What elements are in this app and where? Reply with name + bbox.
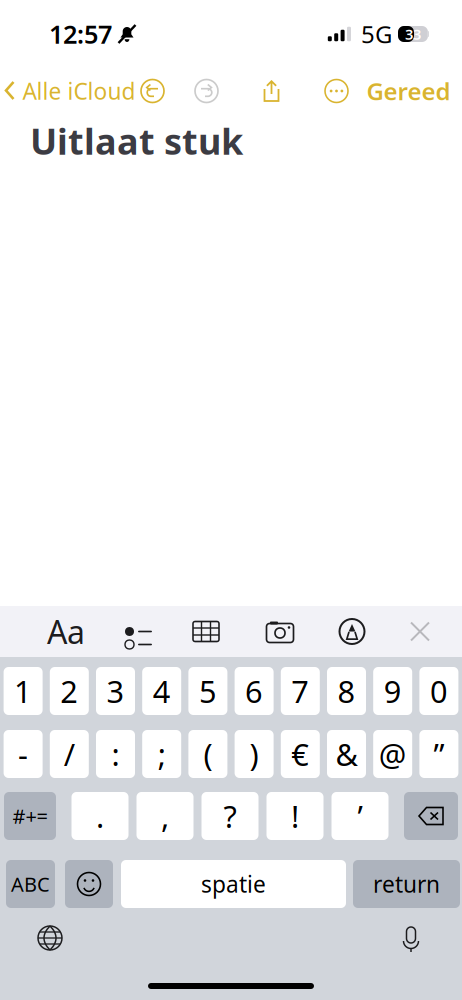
staticText: ABC (11, 871, 50, 897)
staticText: Gereed (366, 75, 450, 107)
staticText: 5 (199, 671, 217, 711)
button[interactable]: Table (182, 606, 230, 656)
button[interactable]: ) (235, 730, 274, 778)
staticText: 12:57 (49, 17, 112, 51)
staticText: 6 (245, 671, 263, 711)
button[interactable]: 1 (4, 667, 43, 715)
staticText: ? (223, 796, 236, 836)
button[interactable]: Undo (130, 69, 174, 113)
staticText: , (161, 796, 169, 836)
button[interactable]: Backspace (404, 792, 458, 840)
staticText: ; (158, 734, 166, 774)
button[interactable]: spatie (121, 860, 346, 908)
button[interactable]: : (96, 730, 135, 778)
staticText: ( (203, 734, 212, 774)
button[interactable]: 2 (50, 667, 89, 715)
button[interactable]: , (136, 792, 193, 840)
staticText: ’ (357, 796, 362, 836)
staticText: 8 (337, 671, 355, 711)
button[interactable]: return (353, 860, 460, 908)
button[interactable]: Gereed (366, 69, 462, 113)
staticText: € (291, 734, 309, 774)
staticText: #+= (12, 803, 47, 829)
button[interactable]: 8 (327, 667, 366, 715)
staticText: 9 (384, 671, 402, 711)
button[interactable]: . (71, 792, 128, 840)
staticText: 2 (60, 671, 78, 711)
button[interactable]: Emoji (65, 860, 113, 908)
button[interactable]: ; (142, 730, 181, 778)
staticText: 5G (361, 18, 392, 50)
button[interactable]: ’ (331, 792, 388, 840)
button[interactable]: ABC (6, 860, 55, 908)
staticText: ” (433, 734, 444, 774)
staticText: ) (250, 734, 259, 774)
button[interactable]: ” (419, 730, 458, 778)
staticText: 4 (153, 671, 171, 711)
button[interactable]: Checklist (108, 606, 156, 656)
button[interactable]: Dictate (389, 916, 433, 960)
staticText: 7 (291, 671, 309, 711)
button[interactable]: Alle iCloud (0, 69, 130, 113)
button[interactable]: 7 (281, 667, 320, 715)
button[interactable]: More (314, 69, 358, 113)
staticText: : (111, 734, 119, 774)
staticText: . (96, 796, 104, 836)
button[interactable]: @ (373, 730, 412, 778)
button[interactable]: € (281, 730, 320, 778)
staticText: Aa (47, 610, 85, 653)
button[interactable]: Camera (256, 606, 304, 656)
button[interactable]: Redo (184, 69, 228, 113)
button[interactable]: Share (249, 69, 293, 113)
staticText: @ (379, 734, 407, 774)
button[interactable]: Markup (328, 606, 376, 656)
button[interactable]: ! (266, 792, 323, 840)
button[interactable]: & (327, 730, 366, 778)
button[interactable]: 9 (373, 667, 412, 715)
staticText: spatie (201, 869, 266, 899)
staticText: return (373, 869, 440, 899)
button[interactable]: / (50, 730, 89, 778)
button[interactable]: Aa (42, 606, 90, 656)
staticText: Uitlaat stuk (30, 117, 243, 165)
button[interactable]: - (4, 730, 43, 778)
button[interactable]: #+= (4, 792, 56, 840)
staticText: & (335, 734, 357, 774)
staticText: ! (291, 796, 299, 836)
button[interactable]: 3 (96, 667, 135, 715)
button[interactable]: Close (396, 606, 444, 656)
button[interactable]: 6 (235, 667, 274, 715)
button[interactable]: ? (201, 792, 258, 840)
staticText: 0 (430, 671, 448, 711)
staticText: - (18, 734, 28, 774)
staticText: 3 (106, 671, 124, 711)
button[interactable]: ( (188, 730, 227, 778)
staticText: Alle iCloud (22, 76, 135, 106)
staticText: 33 (405, 24, 421, 44)
button[interactable]: 5 (188, 667, 227, 715)
staticText: / (64, 734, 75, 774)
button[interactable]: 4 (142, 667, 181, 715)
button[interactable]: 0 (419, 667, 458, 715)
staticText: 1 (14, 671, 32, 711)
button[interactable]: Switch keyboard (28, 916, 72, 960)
